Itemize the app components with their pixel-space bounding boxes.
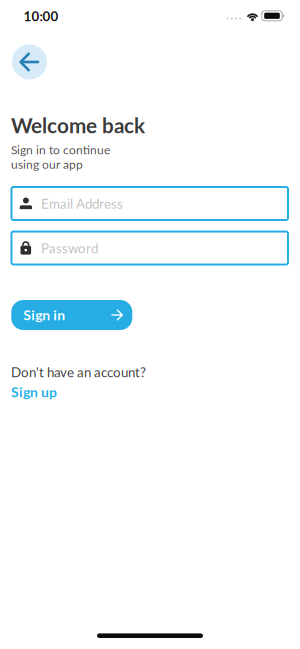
staticText: Password (41, 240, 98, 256)
button[interactable]: Back (12, 44, 47, 79)
button[interactable]: Sign in (11, 300, 132, 330)
button[interactable]: Sign up (11, 383, 57, 400)
button[interactable]: Password (11, 231, 288, 264)
staticText: Don't have an account? (11, 364, 146, 380)
staticText: Sign in (23, 306, 65, 323)
staticText: Sign up (11, 383, 57, 400)
button[interactable]: Email Address (11, 187, 288, 220)
staticText: Sign in to continue using our app (11, 142, 110, 171)
staticText: Welcome back (11, 113, 145, 138)
staticText: 10:00 (23, 8, 58, 24)
staticText: Email Address (41, 195, 123, 211)
